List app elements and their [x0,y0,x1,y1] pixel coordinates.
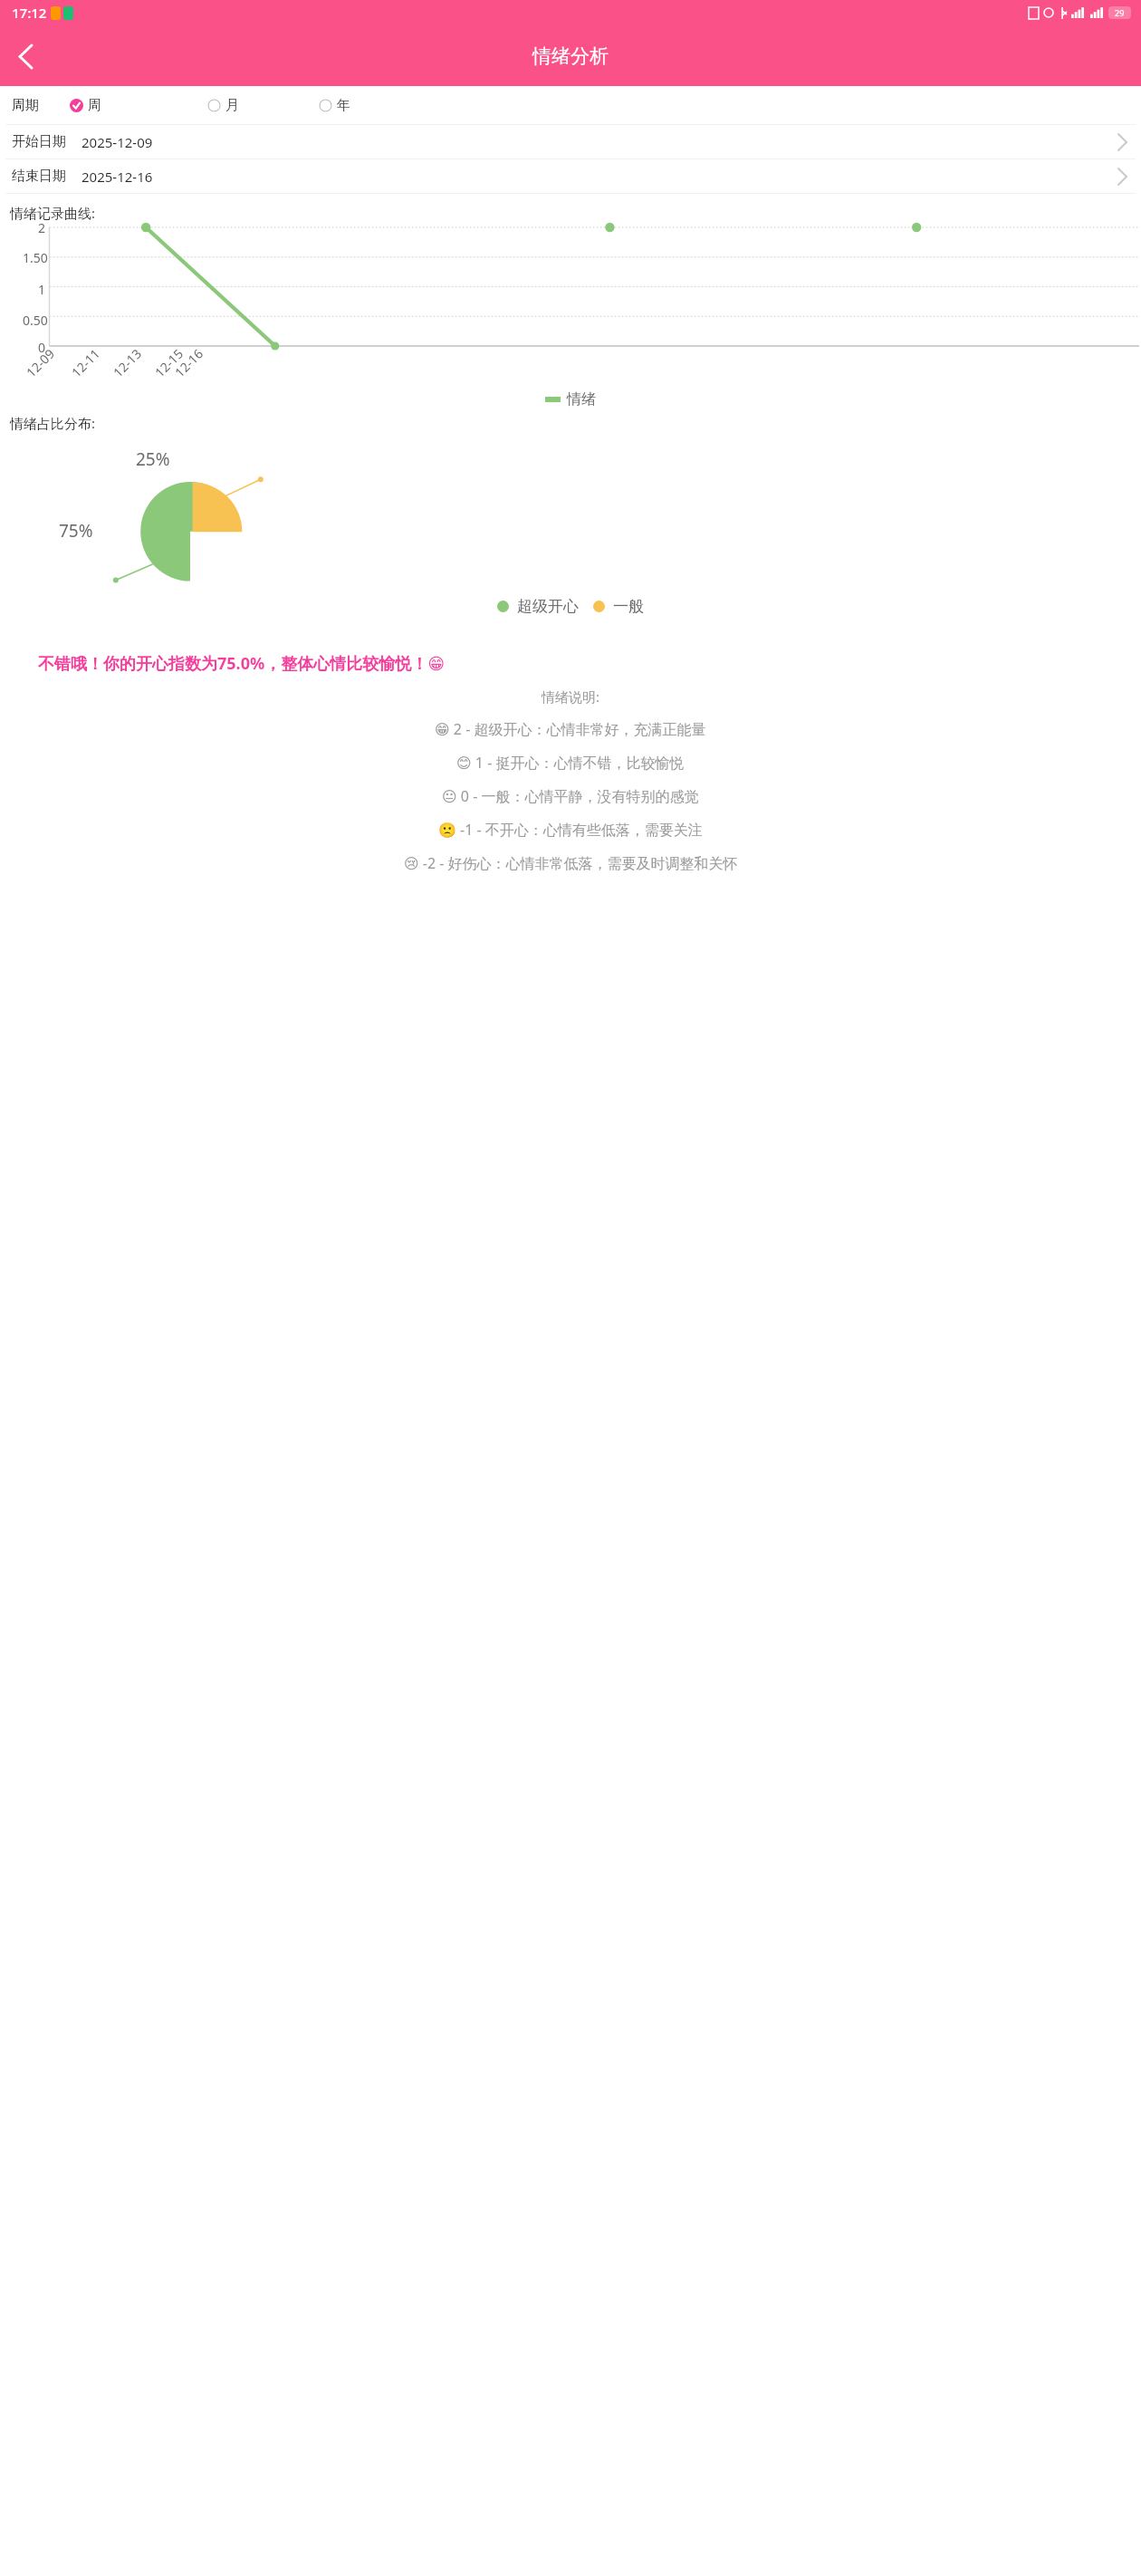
staticText: 周期 [12,97,39,114]
staticText: 12-15 [151,345,187,381]
button[interactable]: 年 [319,93,350,118]
staticText: 一般 [613,597,644,616]
staticText: 25% [136,447,170,471]
staticText: 结束日期 [12,168,66,185]
button[interactable]: 月 [207,93,239,118]
staticText: 12-09 [22,345,58,381]
staticText: 😢 -2 - 好伤心：心情非常低落，需要及时调整和关怀 [404,853,738,873]
staticText: 12-11 [68,345,104,381]
staticText: 年 [337,97,350,114]
staticText: 情绪记录曲线: [10,204,96,222]
staticText: 0.50 [23,312,48,329]
button[interactable]: 结束日期 [0,159,1141,193]
staticText: 🙁 -1 - 不开心：心情有些低落，需要关注 [438,820,703,840]
staticText: 17:12 [12,4,47,22]
button[interactable]: 开始日期 [0,125,1141,159]
staticText: 情绪 [567,390,596,409]
button[interactable]: 返回 [0,31,51,82]
staticText: 开始日期 [12,133,66,150]
staticText: 不错哦！你的开心指数为75.0%，整体心情比较愉悦！😁 [38,652,445,675]
staticText: 情绪说明: [542,687,600,706]
staticText: 0 [38,339,46,356]
staticText: 情绪占比分布: [10,414,96,432]
staticText: 月 [225,97,239,114]
staticText: 12-16 [171,345,207,381]
staticText: 1.50 [23,249,48,266]
button[interactable]: 周 [70,93,101,118]
staticText: 2 [38,219,46,236]
staticText: 😊 1 - 挺开心：心情不错，比较愉悦 [456,753,685,773]
staticText: 12-13 [109,345,145,381]
staticText: 2025-12-09 [81,133,153,151]
staticText: 😁 2 - 超级开心：心情非常好，充满正能量 [435,719,706,739]
staticText: 1 [38,281,46,298]
staticText: 😐 0 - 一般：心情平静，没有特别的感觉 [442,786,699,806]
staticText: 超级开心 [517,597,579,616]
staticText: 情绪分析 [532,44,609,68]
staticText: 周 [88,97,101,114]
staticText: 75% [59,519,93,543]
staticText: 29 [1115,7,1125,18]
staticText: 2025-12-16 [81,168,153,186]
